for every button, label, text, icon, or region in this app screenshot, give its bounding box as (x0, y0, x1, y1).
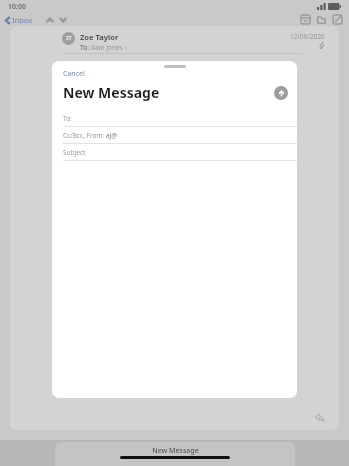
staticText: Alan Jones (91, 43, 123, 52)
staticText: To: (80, 43, 91, 52)
button[interactable]: Inbox (0, 15, 37, 25)
staticText: Zoe Taylor (80, 32, 119, 42)
button[interactable]: Previous message (43, 13, 56, 26)
button[interactable]: Subject (52, 144, 297, 160)
button[interactable]: Reply (313, 410, 327, 424)
button[interactable]: Cancel (52, 68, 93, 80)
staticText: aj@ (106, 131, 118, 140)
button[interactable]: Archive (297, 13, 313, 26)
staticText: Subject (63, 148, 86, 157)
button[interactable]: New Message (55, 442, 295, 466)
button[interactable]: Cc/Bcc, From: (52, 127, 297, 143)
staticText: 12/06/2020 (290, 32, 325, 41)
staticText: To: (63, 114, 72, 123)
button[interactable]: Compose (329, 13, 345, 26)
button[interactable]: Send (274, 86, 288, 100)
staticText: Inbox (12, 15, 33, 25)
staticText: › (125, 43, 128, 52)
staticText: 10:00 (8, 2, 26, 12)
staticText: Cc/Bcc, From: (63, 131, 106, 140)
staticText: Cancel (63, 69, 85, 79)
button[interactable]: Next message (56, 13, 69, 26)
button[interactable]: Move to folder (313, 13, 329, 26)
staticText: New Message (63, 83, 160, 102)
button[interactable]: To: (52, 110, 297, 126)
staticText: New Message (152, 446, 199, 456)
staticText: ZT (66, 35, 72, 42)
